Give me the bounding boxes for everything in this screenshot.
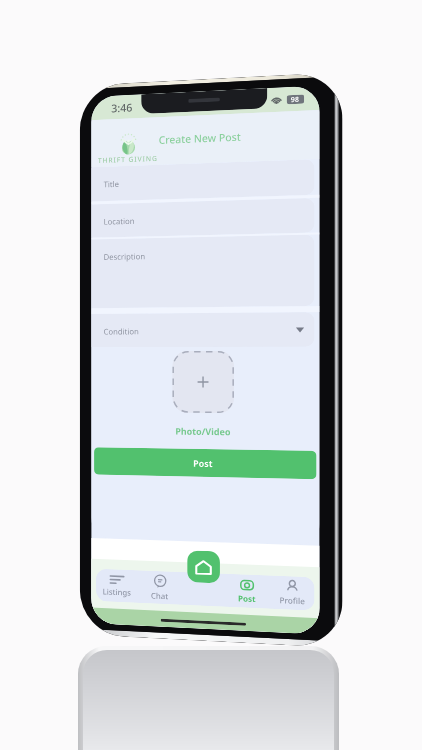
button[interactable]: Location xyxy=(91,198,314,238)
staticText: Profile xyxy=(279,594,305,606)
staticText: Photo/Video xyxy=(175,425,231,437)
staticText: 98 xyxy=(291,95,300,104)
staticText: Condition xyxy=(104,325,139,336)
staticText: Location xyxy=(104,215,135,226)
button[interactable]: Description xyxy=(91,235,314,308)
button[interactable]: Home xyxy=(187,550,220,583)
staticText: Title xyxy=(104,178,119,189)
button[interactable]: Post xyxy=(94,447,317,479)
staticText: Chat xyxy=(151,590,168,601)
staticText: Description xyxy=(104,250,146,262)
staticText: Post xyxy=(238,592,256,604)
staticText: Listings xyxy=(103,586,132,598)
staticText: THRIFT GIVING xyxy=(98,154,159,166)
button[interactable]: Chat xyxy=(138,574,181,602)
button[interactable]: Condition xyxy=(91,312,314,347)
button[interactable]: Title xyxy=(91,159,314,201)
button[interactable]: Profile xyxy=(269,579,314,607)
button[interactable]: Post xyxy=(225,578,269,605)
staticText: 3:46 xyxy=(111,100,132,115)
button[interactable] xyxy=(172,351,234,413)
staticText: Create New Post xyxy=(159,130,241,147)
staticText: Post xyxy=(193,457,213,469)
button[interactable]: Listings xyxy=(96,573,138,598)
